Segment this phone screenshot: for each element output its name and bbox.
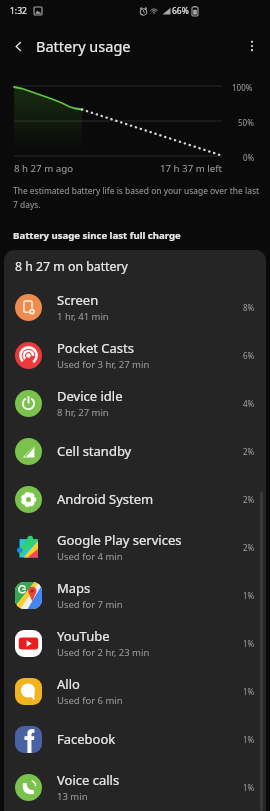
staticText: Used for 2 hr, 23 min [57, 646, 150, 659]
staticText: Pocket Casts [57, 339, 134, 357]
button[interactable]: Facebook [4, 715, 266, 763]
button[interactable]: Cell standby [4, 427, 266, 475]
button[interactable]: YouTube [4, 619, 266, 667]
staticText: 1% [243, 686, 255, 697]
button[interactable]: Voice calls [4, 763, 266, 811]
staticText: 1% [243, 590, 255, 601]
staticText: Battery usage [36, 36, 131, 56]
button[interactable]: Maps [4, 571, 266, 619]
staticText: 8 h 27 m on battery [15, 258, 128, 275]
staticText: Used for 6 min [57, 694, 123, 707]
button[interactable]: Allo [4, 667, 266, 715]
staticText: Screen [57, 291, 99, 309]
staticText: Device idle [57, 387, 123, 405]
staticText: YouTube [57, 627, 110, 645]
staticText: 1 hr, 41 min [57, 310, 109, 323]
staticText: 2% [243, 446, 255, 457]
staticText: Used for 3 hr, 27 min [57, 358, 150, 371]
staticText: Voice calls [57, 771, 120, 789]
button[interactable]: Back [3, 31, 33, 61]
staticText: 7 days. [13, 199, 41, 211]
staticText: 50% [238, 117, 254, 128]
staticText: 8% [243, 302, 255, 313]
staticText: Facebook [57, 730, 116, 748]
staticText: 13 min [57, 790, 88, 803]
staticText: 2% [243, 542, 255, 553]
button[interactable]: More options [237, 31, 267, 61]
button[interactable]: Device idle [4, 379, 266, 427]
button[interactable]: Pocket Casts [4, 331, 266, 379]
button[interactable]: Android System [4, 475, 266, 523]
staticText: 1% [243, 782, 255, 793]
staticText: The estimated battery life is based on y… [13, 185, 259, 197]
button[interactable]: Screen [4, 283, 266, 331]
staticText: 2% [243, 494, 255, 505]
staticText: 8 hr, 27 min [57, 406, 109, 419]
staticText: 0% [243, 152, 255, 163]
staticText: 66% [172, 5, 189, 17]
staticText: Cell standby [57, 442, 132, 460]
staticText: Android System [57, 490, 154, 508]
staticText: 1% [243, 638, 255, 649]
staticText: Battery usage since last full charge [13, 229, 181, 242]
staticText: Maps [57, 579, 91, 597]
staticText: Used for 7 min [57, 598, 123, 611]
staticText: 17 h 37 m left [160, 162, 223, 175]
button[interactable]: Google Play services [4, 523, 266, 571]
staticText: Used for 4 min [57, 550, 123, 563]
staticText: 6% [243, 350, 255, 361]
staticText: 100% [232, 82, 253, 93]
staticText: Allo [57, 675, 80, 693]
staticText: 1% [243, 734, 255, 745]
staticText: 4% [243, 398, 255, 409]
staticText: 8 h 27 m ago [14, 162, 73, 175]
staticText: 1:32 [10, 5, 27, 17]
staticText: Google Play services [57, 531, 182, 549]
